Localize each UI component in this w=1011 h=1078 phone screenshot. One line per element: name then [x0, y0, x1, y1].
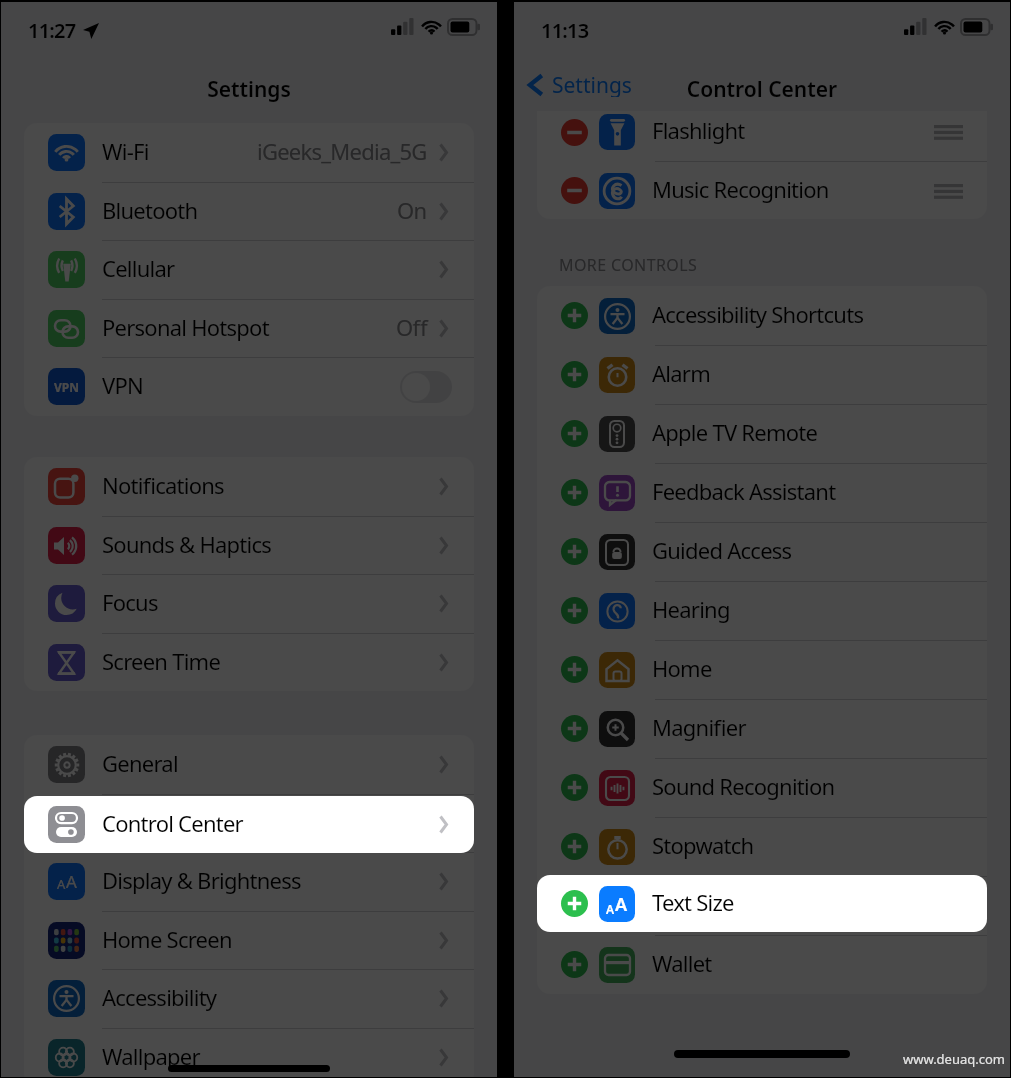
button[interactable]: Personal Hotspot: [24, 299, 474, 358]
staticText: Wallet: [652, 948, 712, 978]
staticText: Control Center: [102, 807, 243, 837]
staticText: Bluetooth: [102, 195, 198, 225]
button[interactable]: Apple TV Remote: [537, 404, 987, 463]
button[interactable]: Home Screen: [24, 911, 474, 970]
button[interactable]: Accessibility: [24, 969, 474, 1028]
staticText: Apple TV Remote: [652, 417, 818, 447]
staticText: Home Screen: [102, 924, 232, 954]
staticText: VPN: [54, 379, 80, 395]
staticText: Display & Brightness: [102, 865, 301, 895]
staticText: Screen Time: [102, 646, 221, 676]
button[interactable]: Sounds & Haptics: [24, 516, 474, 575]
button[interactable]: Accessibility Shortcuts: [537, 286, 987, 345]
staticText: Home: [652, 653, 712, 683]
button[interactable]: Screen Time: [24, 633, 474, 691]
staticText: On: [397, 195, 427, 225]
staticText: A: [606, 901, 615, 917]
staticText: Accessibility Shortcuts: [652, 299, 864, 329]
staticText: General: [102, 748, 178, 778]
staticText: Stopwatch: [652, 830, 754, 860]
staticText: iGeeks_Media_5G: [257, 136, 427, 166]
staticText: Magnifier: [652, 712, 746, 742]
button[interactable]: Feedback Assistant: [537, 463, 987, 522]
staticText: Text Size: [652, 887, 734, 917]
button[interactable]: Wallet: [537, 935, 987, 994]
button[interactable]: Home: [537, 640, 987, 699]
staticText: Control Center: [514, 75, 1010, 104]
staticText: Sound Recognition: [652, 771, 835, 801]
staticText: Feedback Assistant: [652, 476, 836, 506]
button[interactable]: A: [537, 876, 987, 935]
staticText: www.deuaq.com: [903, 1050, 1006, 1068]
button[interactable]: Focus: [24, 574, 474, 633]
button[interactable]: Hearing: [537, 581, 987, 640]
button[interactable]: Control Center: [24, 796, 474, 853]
staticText: Alarm: [652, 358, 710, 388]
staticText: Text Size: [652, 889, 734, 919]
staticText: A: [57, 875, 66, 893]
staticText: Personal Hotspot: [102, 312, 269, 342]
button[interactable]: Stopwatch: [537, 817, 987, 876]
button[interactable]: Guided Access: [537, 522, 987, 581]
button[interactable]: Bluetooth: [24, 182, 474, 241]
staticText: Guided Access: [652, 535, 792, 565]
button[interactable]: Cellular: [24, 240, 474, 299]
staticText: Hearing: [652, 594, 730, 624]
staticText: A: [66, 870, 77, 893]
button[interactable]: Wallpaper: [24, 1028, 474, 1077]
staticText: Off: [396, 312, 427, 342]
button[interactable]: General: [24, 735, 474, 794]
button[interactable]: Control Center: [24, 794, 474, 853]
button[interactable]: Sound Recognition: [537, 758, 987, 817]
staticText: VPN: [102, 370, 143, 400]
staticText: 11:13: [541, 17, 589, 44]
staticText: MORE CONTROLS: [559, 254, 698, 276]
button[interactable]: Flashlight: [537, 111, 987, 153]
button[interactable]: Magnifier: [537, 699, 987, 758]
button[interactable]: Wi-Fi: [24, 123, 474, 182]
staticText: Control Center: [102, 808, 243, 838]
staticText: Wi-Fi: [102, 136, 149, 166]
button[interactable]: A: [24, 852, 474, 911]
staticText: Music Recognition: [652, 174, 829, 204]
button[interactable]: Alarm: [537, 345, 987, 404]
staticText: Settings: [552, 71, 632, 97]
staticText: Cellular: [102, 253, 175, 283]
staticText: 11:27: [28, 17, 76, 44]
button[interactable]: VPN: [24, 357, 474, 416]
button[interactable]: A: [537, 875, 987, 932]
staticText: Flashlight: [652, 115, 745, 145]
staticText: A: [606, 903, 615, 919]
staticText: Focus: [102, 587, 158, 617]
staticText: A: [615, 892, 628, 917]
staticText: Sounds & Haptics: [102, 529, 272, 559]
button[interactable]: VPN toggle: [400, 371, 452, 403]
button[interactable]: Notifications: [24, 457, 474, 516]
staticText: A: [615, 894, 628, 919]
staticText: Notifications: [102, 470, 224, 500]
button[interactable]: Music Recognition: [537, 161, 987, 219]
button[interactable]: Back to Settings: [528, 72, 632, 98]
staticText: Settings: [1, 75, 497, 104]
staticText: Wallpaper: [102, 1041, 200, 1071]
staticText: Accessibility: [102, 982, 217, 1012]
